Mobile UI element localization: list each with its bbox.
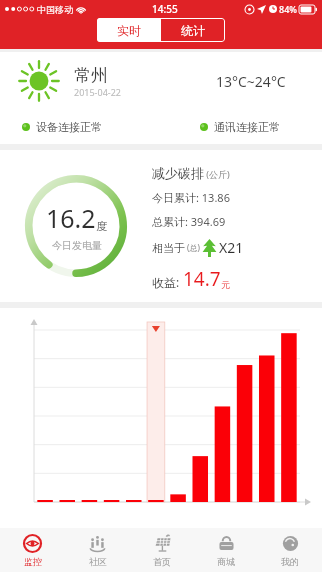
staticText: 84%	[279, 3, 297, 15]
staticText: 今日发电量	[52, 239, 102, 252]
staticText: 元	[221, 279, 230, 290]
button[interactable]: 首页	[130, 528, 194, 572]
button[interactable]: 常州	[0, 52, 322, 144]
staticText: 2015-04-22	[74, 86, 121, 98]
staticText: 收益:	[152, 274, 183, 290]
staticText: 监控	[24, 556, 42, 567]
staticText: 减少碳排	[152, 165, 204, 181]
staticText: 社区	[89, 556, 107, 567]
staticText: 今日累计: 13.86	[152, 190, 230, 205]
staticText: 实时	[117, 23, 141, 38]
button[interactable]: 我的	[258, 528, 322, 572]
staticText: X21	[219, 238, 244, 257]
staticText: 常州	[74, 65, 108, 86]
staticText: 相当于	[152, 241, 185, 255]
staticText: 度	[96, 219, 107, 233]
staticText: 总累计: 394.69	[152, 214, 226, 229]
button[interactable]: 监控	[0, 528, 65, 572]
staticText: 14.7	[183, 266, 221, 292]
staticText: 13°C~24°C	[216, 72, 286, 91]
staticText: 统计	[181, 23, 205, 38]
staticText: (总)	[185, 242, 200, 253]
button[interactable]: 通讯连接正常	[200, 120, 280, 134]
staticText: 首页	[153, 556, 171, 567]
button[interactable]: 16.2	[0, 150, 322, 302]
button[interactable]: 社区	[65, 528, 130, 572]
staticText: 通讯连接正常	[214, 120, 280, 134]
staticText: (公斤)	[204, 168, 230, 180]
staticText: 我的	[281, 556, 299, 567]
button[interactable]: 商城	[194, 528, 258, 572]
staticText: 14:55	[152, 2, 178, 16]
button[interactable]: 设备连接正常	[22, 120, 102, 134]
staticText: 设备连接正常	[36, 120, 102, 134]
staticText: 16.2	[46, 201, 96, 235]
button[interactable]: 实时	[97, 18, 161, 42]
button[interactable]: 统计	[161, 18, 225, 42]
staticText: 商城	[217, 556, 235, 567]
staticText: 中国移动	[37, 4, 73, 15]
